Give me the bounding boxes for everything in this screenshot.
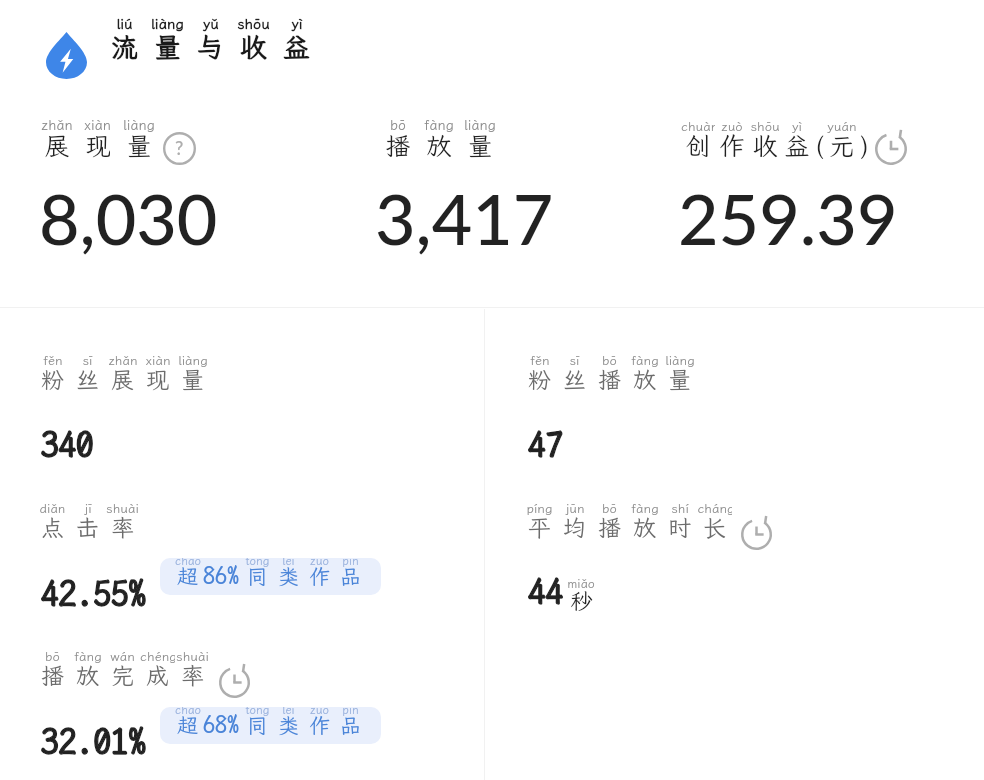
staticText: 作 <box>719 129 745 162</box>
staticText: 与 <box>197 29 224 65</box>
staticText: zuò <box>310 707 329 717</box>
staticText: liú <box>116 14 133 33</box>
staticText: 完 <box>111 660 134 690</box>
staticText: 收 <box>752 129 778 162</box>
staticText: 品 <box>340 562 361 590</box>
button[interactable]: 超 <box>160 558 381 595</box>
staticText: 类 <box>278 562 299 590</box>
staticText: xiàn <box>145 352 171 369</box>
staticText: 42.55% <box>41 573 147 614</box>
staticText: 47 <box>528 424 564 465</box>
staticText: zuò <box>721 118 743 135</box>
staticText: 丝 <box>563 364 586 394</box>
staticText: shí <box>671 500 689 517</box>
staticText: 收 <box>240 29 267 65</box>
staticText: fàng <box>631 352 659 369</box>
staticText: bō <box>390 116 406 134</box>
button[interactable]: Traffic and earnings <box>46 32 318 79</box>
staticText: zuò <box>310 558 329 568</box>
staticText: 同 <box>247 711 268 739</box>
staticText: yǔ <box>203 14 219 33</box>
staticText: sī <box>569 352 580 369</box>
staticText: 平 <box>528 512 551 542</box>
staticText: 点 <box>41 512 64 542</box>
staticText: yì <box>291 14 303 33</box>
staticText: 放 <box>633 512 656 542</box>
other: History <box>219 667 250 698</box>
staticText: sī <box>82 352 93 369</box>
staticText: chāo <box>175 707 201 717</box>
staticText: 播 <box>385 129 411 162</box>
staticText: 作 <box>309 562 330 590</box>
staticText: yì <box>792 118 802 135</box>
button[interactable]: 超 <box>160 707 381 744</box>
staticText: 8,030 <box>39 176 218 260</box>
staticText: 元 <box>829 129 855 162</box>
staticText: 340 <box>41 424 94 465</box>
other: History <box>875 133 907 165</box>
staticText: 时 <box>668 512 691 542</box>
staticText: fěn <box>43 352 63 369</box>
staticText: 放 <box>76 660 99 690</box>
staticText: jī <box>84 500 92 517</box>
staticText: 播 <box>598 512 621 542</box>
staticText: chāo <box>175 558 201 568</box>
staticText: 击 <box>76 512 99 542</box>
staticText: ) <box>860 129 869 162</box>
staticText: wán <box>110 648 135 665</box>
staticText: 42.55% <box>41 573 147 614</box>
staticText: 成 <box>146 660 169 690</box>
staticText: liàng <box>665 352 695 369</box>
staticText: tóng <box>245 558 270 568</box>
staticText: xiàn <box>84 116 111 134</box>
staticText: 放 <box>426 129 452 162</box>
staticText: chéng <box>140 648 175 665</box>
staticText: 现 <box>85 129 111 162</box>
staticText: 量 <box>668 364 691 394</box>
staticText: fàng <box>74 648 102 665</box>
staticText: shōu <box>750 118 780 135</box>
staticText: chuàng <box>681 118 715 135</box>
staticText: bō <box>602 352 617 369</box>
staticText: shuài <box>176 648 209 665</box>
button[interactable]: Help <box>163 132 196 165</box>
staticText: 率 <box>111 512 134 542</box>
staticText: 44 <box>528 571 564 612</box>
staticText: shuài <box>106 500 139 517</box>
staticText: píng <box>526 500 553 517</box>
staticText: 均 <box>563 512 586 542</box>
staticText: 益 <box>784 129 810 162</box>
staticText: cháng <box>697 500 732 517</box>
staticText: pǐn <box>342 558 359 568</box>
staticText: 同 <box>247 562 268 590</box>
staticText: 播 <box>598 364 621 394</box>
staticText: zhǎn <box>41 116 73 134</box>
staticText: 品 <box>340 711 361 739</box>
staticText: lèi <box>282 707 295 717</box>
staticText: tóng <box>245 707 270 717</box>
staticText: 作 <box>309 711 330 739</box>
staticText: 益 <box>283 29 310 65</box>
staticText: 超 <box>177 711 198 739</box>
staticText: 流 <box>111 29 138 65</box>
staticText: 量 <box>181 364 204 394</box>
staticText: 展 <box>111 364 134 394</box>
staticText: miǎo <box>567 575 595 591</box>
staticText: shōu <box>237 14 270 33</box>
staticText: yuán <box>827 118 856 135</box>
staticText: 3,417 <box>375 176 554 260</box>
staticText: diǎn <box>39 500 66 517</box>
staticText: fàng <box>424 116 454 134</box>
staticText: 播 <box>41 660 64 690</box>
other: Traffic and earnings <box>46 32 87 79</box>
staticText: 68% <box>203 711 239 739</box>
staticText: jūn <box>565 500 585 517</box>
staticText: 类 <box>278 711 299 739</box>
staticText: 量 <box>126 129 152 162</box>
staticText: 340 <box>41 424 94 465</box>
staticText: liàng <box>178 352 208 369</box>
staticText: 47 <box>528 424 564 465</box>
staticText: 率 <box>181 660 204 690</box>
staticText: 丝 <box>76 364 99 394</box>
staticText: 259.39 <box>678 176 898 260</box>
